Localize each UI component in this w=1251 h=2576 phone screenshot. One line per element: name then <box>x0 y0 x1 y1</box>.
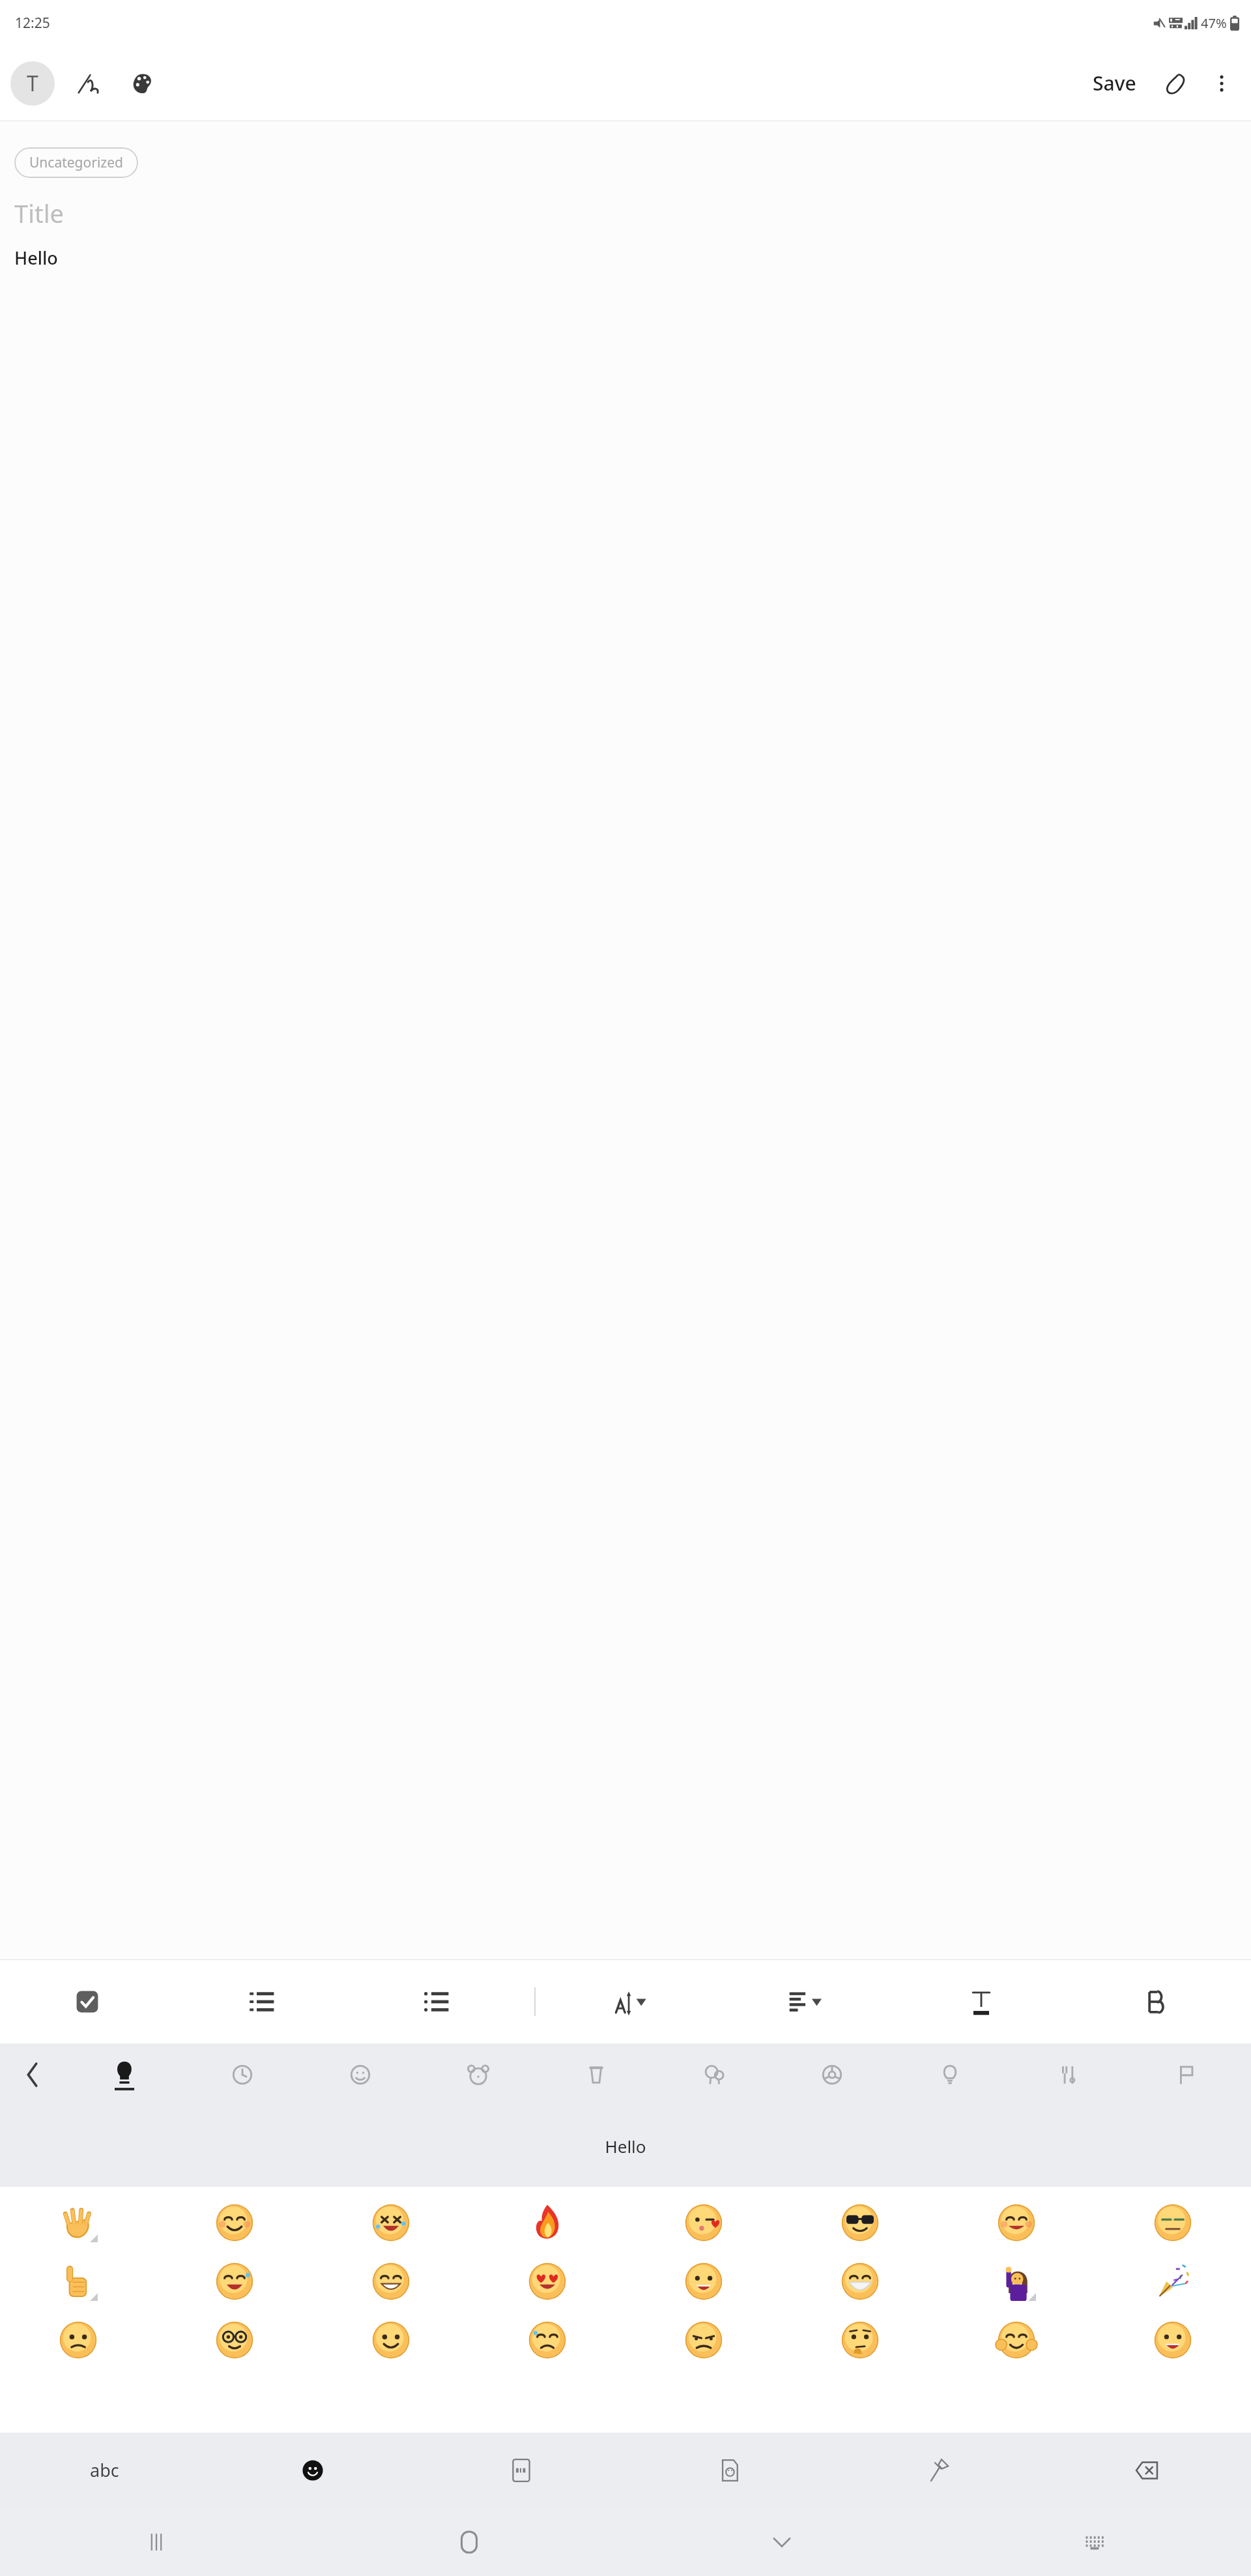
button[interactable]: Hello <box>0 2105 1251 2187</box>
button[interactable]: Emoji 3 <box>313 2193 469 2252</box>
button[interactable]: abc <box>0 2433 208 2508</box>
button[interactable]: Travel <box>773 2043 891 2105</box>
button[interactable]: Emoji 11 <box>313 2252 469 2311</box>
button[interactable]: Emoji 22 <box>782 2311 938 2369</box>
button[interactable]: Text size <box>546 1960 720 2043</box>
button[interactable]: Symbols <box>1009 2043 1127 2105</box>
button[interactable]: Activity <box>655 2043 773 2105</box>
button[interactable]: Recent <box>65 2043 183 2105</box>
button[interactable]: Emoji 9 <box>0 2252 156 2311</box>
staticText: Title <box>14 196 64 230</box>
button[interactable]: Recents <box>0 2508 313 2576</box>
button[interactable]: Emoji <box>208 2433 417 2508</box>
button[interactable]: Emoji 10 <box>156 2252 313 2311</box>
button[interactable]: Emoji 2 <box>156 2193 313 2252</box>
button[interactable]: Pin keyboard <box>834 2433 1042 2508</box>
button[interactable]: Emoji 19 <box>313 2311 469 2369</box>
button[interactable]: Emoji 7 <box>938 2193 1095 2252</box>
button[interactable]: Flags <box>1127 2043 1244 2105</box>
button[interactable]: Checklist <box>0 1960 175 2043</box>
button[interactable]: Emoji 21 <box>625 2311 782 2369</box>
staticText: Save <box>1093 70 1136 96</box>
button[interactable]: Emoji 8 <box>1095 2193 1251 2252</box>
button[interactable]: Stickers <box>625 2433 834 2508</box>
staticText: 12:25 <box>15 14 50 33</box>
button[interactable]: Emoji 1 <box>0 2193 156 2252</box>
button[interactable]: Emoji 4 <box>469 2193 625 2252</box>
button[interactable]: Objects <box>891 2043 1009 2105</box>
staticText: Uncategorized <box>29 153 123 172</box>
button[interactable]: Animals <box>419 2043 537 2105</box>
button[interactable]: Save <box>1087 66 1142 100</box>
button[interactable]: Emoji 12 <box>469 2252 625 2311</box>
button[interactable]: Delete <box>1042 2433 1251 2508</box>
button[interactable]: Emoji 5 <box>625 2193 782 2252</box>
button[interactable]: Emoji 16 <box>1095 2252 1251 2311</box>
button[interactable]: Emoji 24 <box>1095 2311 1251 2369</box>
button[interactable]: Emoji 23 <box>938 2311 1095 2369</box>
staticText: Hello <box>14 246 58 270</box>
staticText: Hello <box>605 2135 646 2158</box>
button[interactable]: Drawing palette <box>122 63 163 104</box>
button[interactable]: Clock <box>183 2043 301 2105</box>
button[interactable]: Handwriting <box>68 63 108 104</box>
button[interactable]: Emoji 14 <box>782 2252 938 2311</box>
button[interactable]: Smileys <box>301 2043 419 2105</box>
button[interactable]: Text mode <box>10 61 55 106</box>
button[interactable]: Emoji 20 <box>469 2311 625 2369</box>
button[interactable]: Attach <box>1156 63 1196 104</box>
button[interactable]: Food <box>537 2043 655 2105</box>
staticText: 47% <box>1201 14 1227 32</box>
button[interactable]: Uncategorized <box>14 147 138 178</box>
button[interactable]: Emoji 6 <box>782 2193 938 2252</box>
button[interactable]: Text colour <box>894 1960 1068 2043</box>
button[interactable]: Switch keyboard <box>938 2508 1251 2576</box>
button[interactable]: Numbered list <box>175 1960 349 2043</box>
button[interactable]: Paragraph alignment <box>720 1960 894 2043</box>
button[interactable]: Hide keyboard <box>625 2508 938 2576</box>
button[interactable]: Back <box>0 2043 65 2105</box>
staticText: T <box>27 69 38 98</box>
button[interactable]: Emoji 18 <box>156 2311 313 2369</box>
button[interactable]: Bold <box>1068 1960 1242 2043</box>
staticText: abc <box>90 2458 119 2482</box>
button[interactable]: Emoji 13 <box>625 2252 782 2311</box>
button[interactable]: Emoji 17 <box>0 2311 156 2369</box>
button[interactable]: Home <box>313 2508 625 2576</box>
button[interactable]: Bullet list <box>349 1960 524 2043</box>
button[interactable]: More options <box>1201 63 1242 104</box>
button[interactable]: GIF <box>417 2433 625 2508</box>
button[interactable]: Emoji 15 <box>938 2252 1095 2311</box>
